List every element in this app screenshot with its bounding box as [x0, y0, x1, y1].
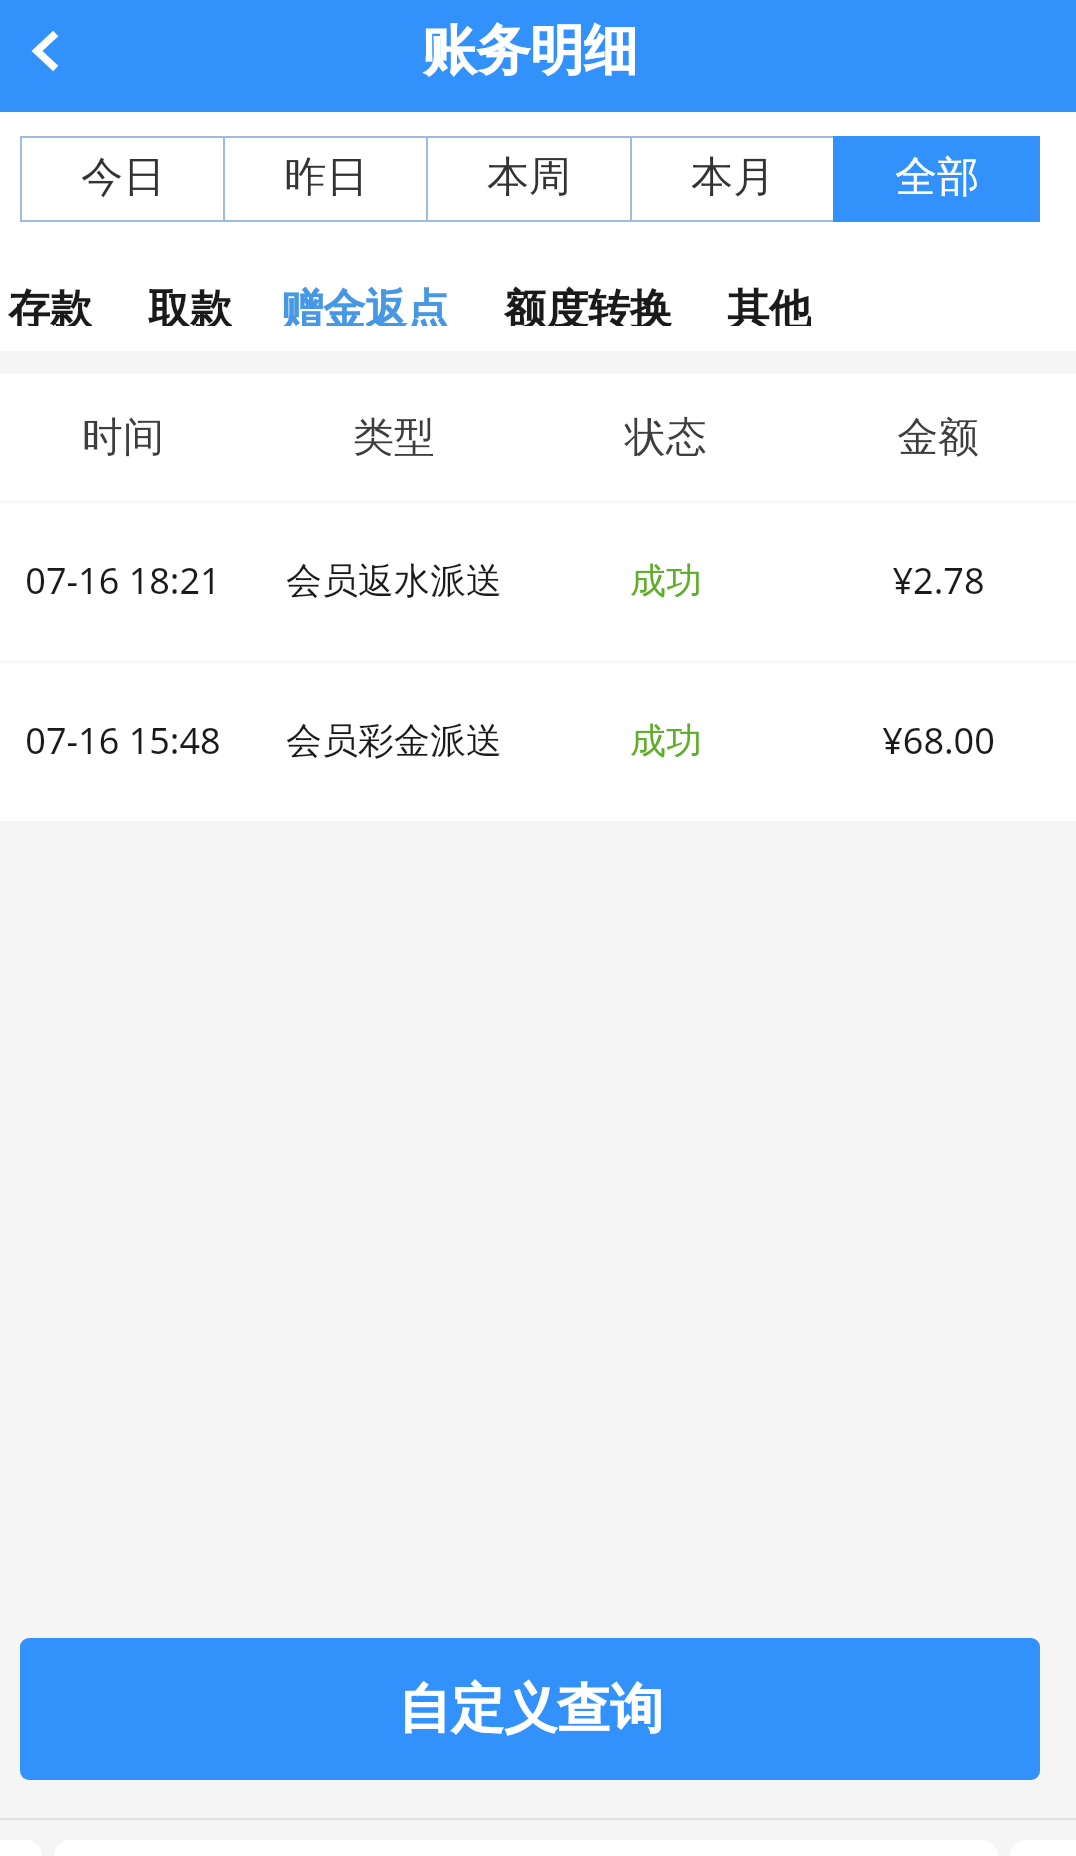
button[interactable]: 昨日 [225, 138, 426, 220]
staticText: 成功 [630, 718, 702, 763]
button[interactable]: 时间 [0, 374, 1076, 501]
staticText: ¥2.78 [892, 556, 985, 605]
button[interactable]: 额度转换 [504, 284, 672, 326]
button[interactable]: 07-16 15:48 [0, 663, 1076, 821]
button[interactable]: 取款 [148, 284, 232, 326]
button[interactable]: Back [0, 0, 96, 112]
staticText: 本周 [487, 151, 571, 204]
staticText: 自定义查询 [398, 1676, 663, 1743]
staticText: 全部 [895, 151, 979, 204]
staticText: 额度转换 [504, 284, 672, 326]
button[interactable]: 07-16 18:21 [0, 503, 1076, 661]
staticText: 今日 [81, 151, 165, 204]
staticText: 会员彩金派送 [286, 718, 502, 763]
staticText: 昨日 [284, 151, 368, 204]
staticText: 账务明细 [422, 17, 638, 85]
staticText: 本月 [691, 151, 775, 204]
staticText: 类型 [353, 412, 435, 464]
staticText: 07-16 18:21 [25, 556, 221, 605]
staticText: 状态 [625, 412, 707, 464]
button[interactable]: 自定义查询 [20, 1638, 1040, 1780]
button[interactable]: 本月 [632, 138, 834, 220]
staticText: 取款 [148, 284, 232, 326]
staticText: 存款 [8, 284, 92, 326]
staticText: 其他 [727, 284, 811, 326]
staticText: 会员返水派送 [286, 558, 502, 603]
staticText: 赠金返点 [281, 284, 449, 326]
staticText: 金额 [897, 412, 979, 464]
staticText: 07-16 15:48 [25, 716, 221, 765]
button[interactable]: 本周 [428, 138, 630, 220]
staticText: 时间 [82, 412, 164, 464]
staticText: ¥68.00 [882, 716, 995, 765]
staticText: 成功 [630, 558, 702, 603]
button[interactable]: 全部 [833, 136, 1040, 222]
button[interactable]: 今日 [22, 138, 223, 220]
button[interactable]: 其他 [727, 284, 811, 326]
button[interactable]: 存款 [8, 284, 92, 326]
button[interactable]: 赠金返点 [281, 284, 449, 326]
